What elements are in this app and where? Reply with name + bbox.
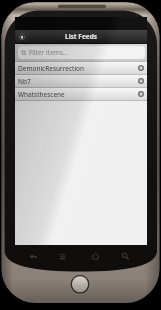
staticText: Filter items... <box>29 48 69 57</box>
staticText: Whatsthescene <box>18 90 138 99</box>
button[interactable]: DemonicResurrection <box>15 62 147 74</box>
button[interactable]: Back <box>25 248 41 264</box>
button[interactable]: Filter items... <box>18 46 145 59</box>
staticText: DemonicResurrection <box>18 64 138 73</box>
staticText: Nb7 <box>18 77 138 86</box>
button[interactable]: Menu <box>54 248 70 264</box>
button[interactable]: Whatsthescene <box>15 88 147 100</box>
button[interactable]: Nb7 <box>15 75 147 87</box>
button[interactable]: Search <box>117 248 133 264</box>
staticText: List Feeds <box>65 32 98 41</box>
button[interactable]: Home <box>16 31 28 42</box>
button[interactable]: Home <box>87 248 103 264</box>
